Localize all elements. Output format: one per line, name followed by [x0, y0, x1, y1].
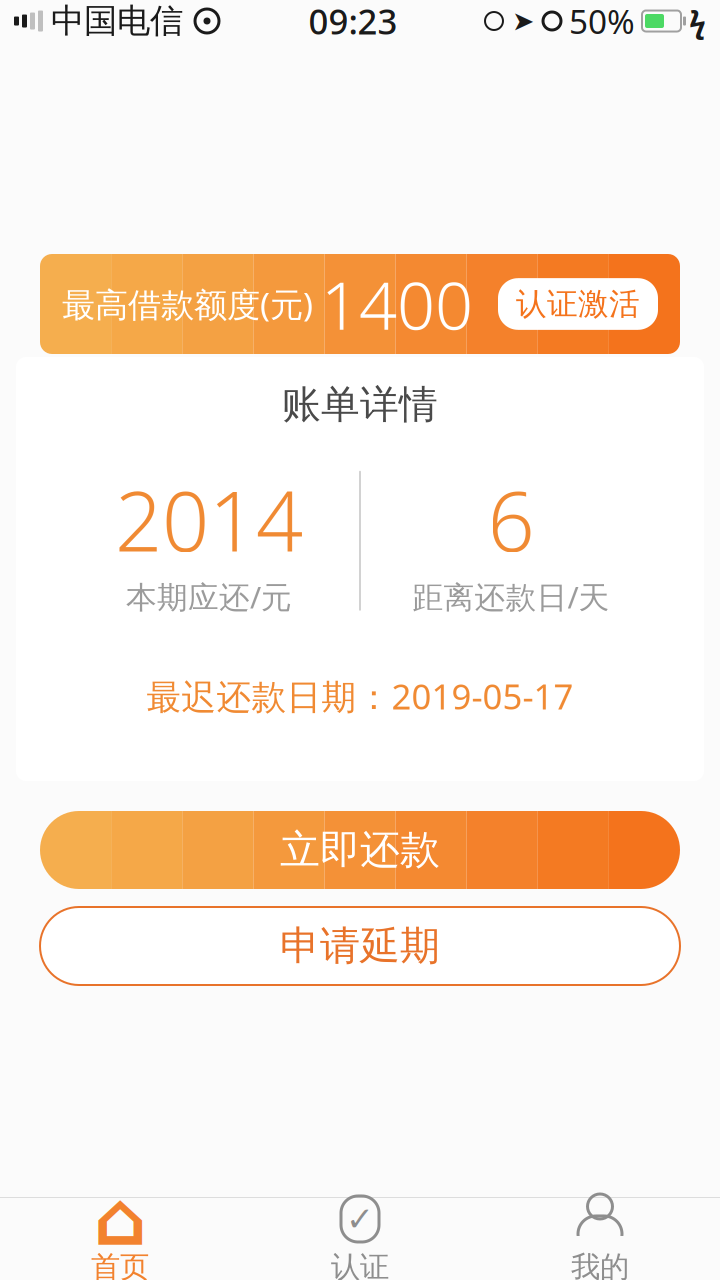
staticText: ✓ — [346, 1200, 374, 1238]
staticText: 账单详情 — [282, 381, 438, 428]
staticText: 最高借款额度(元) — [62, 282, 313, 326]
staticText: 首页 — [91, 1249, 149, 1280]
button[interactable]: ⌂ — [0, 1198, 240, 1280]
staticText: 中国电信 — [51, 0, 183, 41]
staticText: 50% — [569, 0, 635, 43]
staticText: ➤ — [512, 6, 534, 36]
staticText: 2014 — [115, 464, 303, 574]
button[interactable]: 立即还款 — [40, 811, 680, 889]
staticText: 认证 — [331, 1249, 389, 1280]
staticText: 最迟还款日期：2019-05-17 — [146, 673, 573, 719]
staticText: 申请延期 — [280, 921, 440, 970]
button[interactable]: 我的 — [480, 1198, 720, 1280]
staticText: 1400 — [321, 260, 473, 348]
staticText: 09:23 — [308, 0, 397, 44]
button[interactable]: 认证激活 — [498, 278, 658, 330]
button[interactable]: 申请延期 — [40, 907, 680, 985]
staticText: 本期应还/元 — [126, 576, 292, 617]
staticText: ⌂ — [93, 1177, 146, 1261]
staticText: ϟ — [689, 1, 706, 41]
staticText: 6 — [487, 464, 534, 574]
button[interactable]: ✓ — [240, 1198, 480, 1280]
staticText: 认证激活 — [516, 285, 640, 323]
staticText: 立即还款 — [280, 825, 440, 874]
staticText: 距离还款日/天 — [412, 576, 609, 617]
staticText: 我的 — [571, 1249, 629, 1280]
